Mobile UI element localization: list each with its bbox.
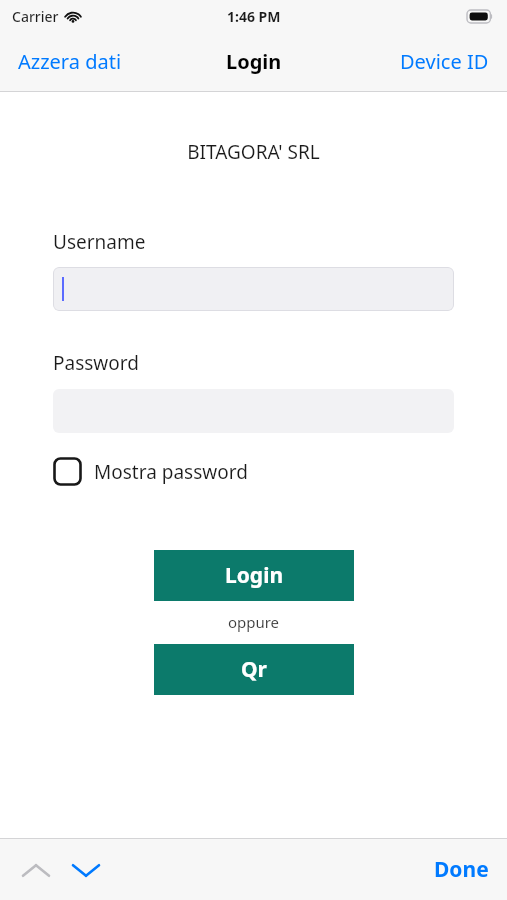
staticText: Mostra password xyxy=(94,459,248,485)
staticText: Done xyxy=(434,855,489,884)
button[interactable]: Done xyxy=(424,847,499,892)
staticText: Device ID xyxy=(400,48,489,75)
staticText: Password xyxy=(53,350,139,376)
staticText: Qr xyxy=(241,655,267,684)
button[interactable]: Login xyxy=(154,550,354,601)
staticText: Login xyxy=(225,561,284,590)
staticText: 1:46 PM xyxy=(227,7,281,26)
button[interactable] xyxy=(53,267,454,311)
button[interactable]: Previous field xyxy=(12,846,60,894)
staticText: Username xyxy=(53,229,146,255)
staticText: Carrier xyxy=(12,7,59,26)
button[interactable]: Next field xyxy=(62,846,110,894)
staticText: oppure xyxy=(0,612,507,632)
button[interactable]: Qr xyxy=(154,644,354,695)
button[interactable]: Azzera dati xyxy=(8,40,132,83)
button[interactable]: Mostra password xyxy=(53,455,256,488)
staticText: Login xyxy=(226,48,282,75)
button[interactable]: Device ID xyxy=(390,40,499,83)
staticText: BITAGORA' SRL xyxy=(0,139,507,165)
staticText: Azzera dati xyxy=(18,48,122,75)
